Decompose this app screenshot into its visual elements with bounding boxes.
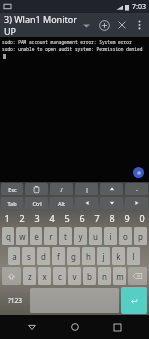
button[interactable]: 8 bbox=[104, 210, 119, 226]
button[interactable]: r bbox=[44, 227, 57, 245]
button[interactable]: n bbox=[98, 267, 111, 285]
button[interactable]: 5 bbox=[59, 210, 74, 226]
button[interactable]: Tab bbox=[1, 197, 23, 209]
button[interactable]: d bbox=[37, 247, 50, 265]
staticText: sudo: PAM account management error: Syst… bbox=[2, 39, 132, 45]
button[interactable]: o bbox=[119, 227, 132, 245]
staticText: q bbox=[6, 231, 11, 242]
staticText: a bbox=[12, 251, 17, 262]
button[interactable]: x bbox=[38, 267, 51, 285]
button[interactable]: g bbox=[67, 247, 80, 265]
button[interactable]: 7 bbox=[89, 210, 104, 226]
staticText: | bbox=[85, 186, 89, 193]
staticText: 4 bbox=[49, 212, 55, 224]
staticText: i bbox=[109, 231, 112, 242]
button[interactable]: / bbox=[50, 183, 73, 195]
staticText: g bbox=[71, 251, 76, 262]
button[interactable]: sudo: PAM account management error: Syst… bbox=[0, 37, 149, 182]
staticText: / bbox=[60, 186, 63, 193]
staticText: UP bbox=[4, 25, 17, 37]
button[interactable]: Select session bbox=[79, 18, 93, 32]
staticText: 9 bbox=[124, 212, 130, 224]
staticText: 0 bbox=[139, 212, 145, 224]
button[interactable]: m bbox=[113, 267, 126, 285]
staticText: n bbox=[102, 271, 107, 282]
button[interactable]: | bbox=[75, 183, 98, 195]
button[interactable]: 3) Wlan1 Monitor bbox=[4, 13, 79, 37]
button[interactable]: More options bbox=[131, 17, 147, 33]
button[interactable]: Back bbox=[21, 316, 43, 338]
button[interactable]: ?123 bbox=[2, 287, 28, 314]
button[interactable]: Home bbox=[64, 316, 86, 338]
button[interactable]: Esc bbox=[1, 183, 23, 195]
button[interactable]: 4 bbox=[44, 210, 59, 226]
button[interactable] bbox=[125, 197, 148, 209]
button[interactable]: v bbox=[68, 267, 81, 285]
button[interactable]: k bbox=[112, 247, 125, 265]
button[interactable]: New session bbox=[95, 16, 113, 34]
staticText: s bbox=[27, 251, 31, 262]
button[interactable] bbox=[100, 197, 123, 209]
button[interactable] bbox=[75, 197, 98, 209]
button[interactable]: b bbox=[83, 267, 96, 285]
button[interactable]: 9 bbox=[119, 210, 134, 226]
button[interactable]: - bbox=[125, 183, 148, 195]
button[interactable]: 3 bbox=[29, 210, 44, 226]
staticText: Alt bbox=[58, 200, 65, 207]
button[interactable]: w bbox=[16, 227, 28, 245]
staticText: - bbox=[136, 186, 138, 193]
button[interactable]: y bbox=[74, 227, 87, 245]
staticText: 7:03 bbox=[132, 2, 146, 12]
button[interactable]: 1 bbox=[0, 210, 14, 226]
button[interactable]: u bbox=[89, 227, 102, 245]
staticText: d bbox=[41, 251, 46, 262]
staticText: b bbox=[87, 271, 92, 282]
staticText: ?123 bbox=[8, 296, 22, 305]
button[interactable]: z bbox=[23, 267, 36, 285]
staticText: v bbox=[72, 271, 77, 282]
staticText: x bbox=[42, 271, 47, 282]
button[interactable]: Recent apps bbox=[106, 316, 128, 338]
button[interactable]: s bbox=[22, 247, 35, 265]
button[interactable]: Shift bbox=[2, 267, 21, 285]
button[interactable] bbox=[100, 183, 123, 195]
staticText: l bbox=[132, 251, 135, 262]
staticText: r bbox=[49, 231, 53, 242]
staticText: e bbox=[34, 231, 39, 242]
staticText: t bbox=[64, 231, 67, 242]
button[interactable]: Enter bbox=[121, 287, 147, 314]
button[interactable]: Ctrl bbox=[25, 197, 48, 209]
button[interactable]: t bbox=[59, 227, 72, 245]
button[interactable]: Backspace bbox=[128, 267, 147, 285]
button[interactable]: 0 bbox=[134, 210, 149, 226]
staticText: 3 bbox=[34, 212, 40, 224]
button[interactable]: Close session bbox=[113, 16, 131, 34]
staticText: 6 bbox=[79, 212, 85, 224]
button[interactable]: a bbox=[8, 247, 20, 265]
button[interactable]: l bbox=[127, 247, 140, 265]
staticText: Ctrl bbox=[32, 200, 42, 207]
button[interactable]: i bbox=[104, 227, 117, 245]
button[interactable]: q bbox=[2, 227, 14, 245]
button[interactable]: 2 bbox=[14, 210, 29, 226]
staticText: 5 bbox=[64, 212, 70, 224]
button[interactable]: e bbox=[30, 227, 42, 245]
button[interactable]: Toggle keyboard bbox=[133, 167, 144, 178]
staticText: m bbox=[116, 271, 124, 282]
button[interactable]: 6 bbox=[74, 210, 89, 226]
button[interactable]: p bbox=[134, 227, 147, 245]
staticText: Tab bbox=[7, 200, 17, 207]
staticText: f bbox=[57, 251, 60, 262]
button[interactable]: c bbox=[53, 267, 66, 285]
staticText: 8 bbox=[109, 212, 115, 224]
staticText: y bbox=[78, 231, 83, 242]
button[interactable]: j bbox=[97, 247, 110, 265]
button[interactable]: h bbox=[82, 247, 95, 265]
staticText: sudo: unable to open audit system: Permi… bbox=[2, 46, 143, 52]
button[interactable]: Alt bbox=[50, 197, 73, 209]
staticText: o bbox=[123, 231, 128, 242]
button[interactable] bbox=[25, 183, 48, 195]
staticText: j bbox=[102, 251, 105, 262]
button[interactable]: f bbox=[52, 247, 65, 265]
